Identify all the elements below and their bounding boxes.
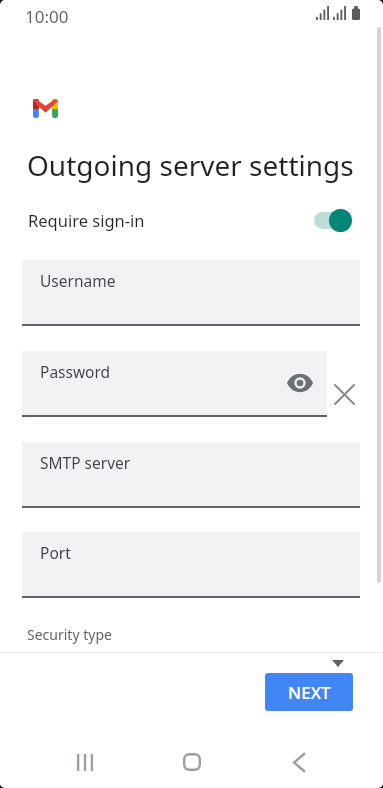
button[interactable]: SMTP server xyxy=(22,442,360,508)
staticText: Port xyxy=(40,542,71,563)
staticText: Outgoing server settings xyxy=(27,146,354,184)
button[interactable]: Recents xyxy=(61,738,109,786)
staticText: Password xyxy=(40,361,111,382)
button[interactable]: Port xyxy=(22,532,360,598)
staticText: Security type xyxy=(27,625,112,644)
button[interactable]: Username xyxy=(22,260,360,326)
staticText: NEXT xyxy=(288,681,331,704)
button[interactable]: Show password xyxy=(282,365,318,401)
button[interactable]: Require sign-in xyxy=(0,201,383,239)
button[interactable]: Clear xyxy=(330,380,358,408)
staticText: 10:00 xyxy=(25,5,69,28)
staticText: SMTP server xyxy=(40,452,131,473)
button[interactable]: Password xyxy=(22,351,327,417)
staticText: Require sign-in xyxy=(28,209,145,231)
button[interactable]: Back xyxy=(275,738,323,786)
button[interactable]: Home xyxy=(168,738,216,786)
button[interactable]: NEXT xyxy=(265,673,353,711)
staticText: Username xyxy=(40,270,116,291)
